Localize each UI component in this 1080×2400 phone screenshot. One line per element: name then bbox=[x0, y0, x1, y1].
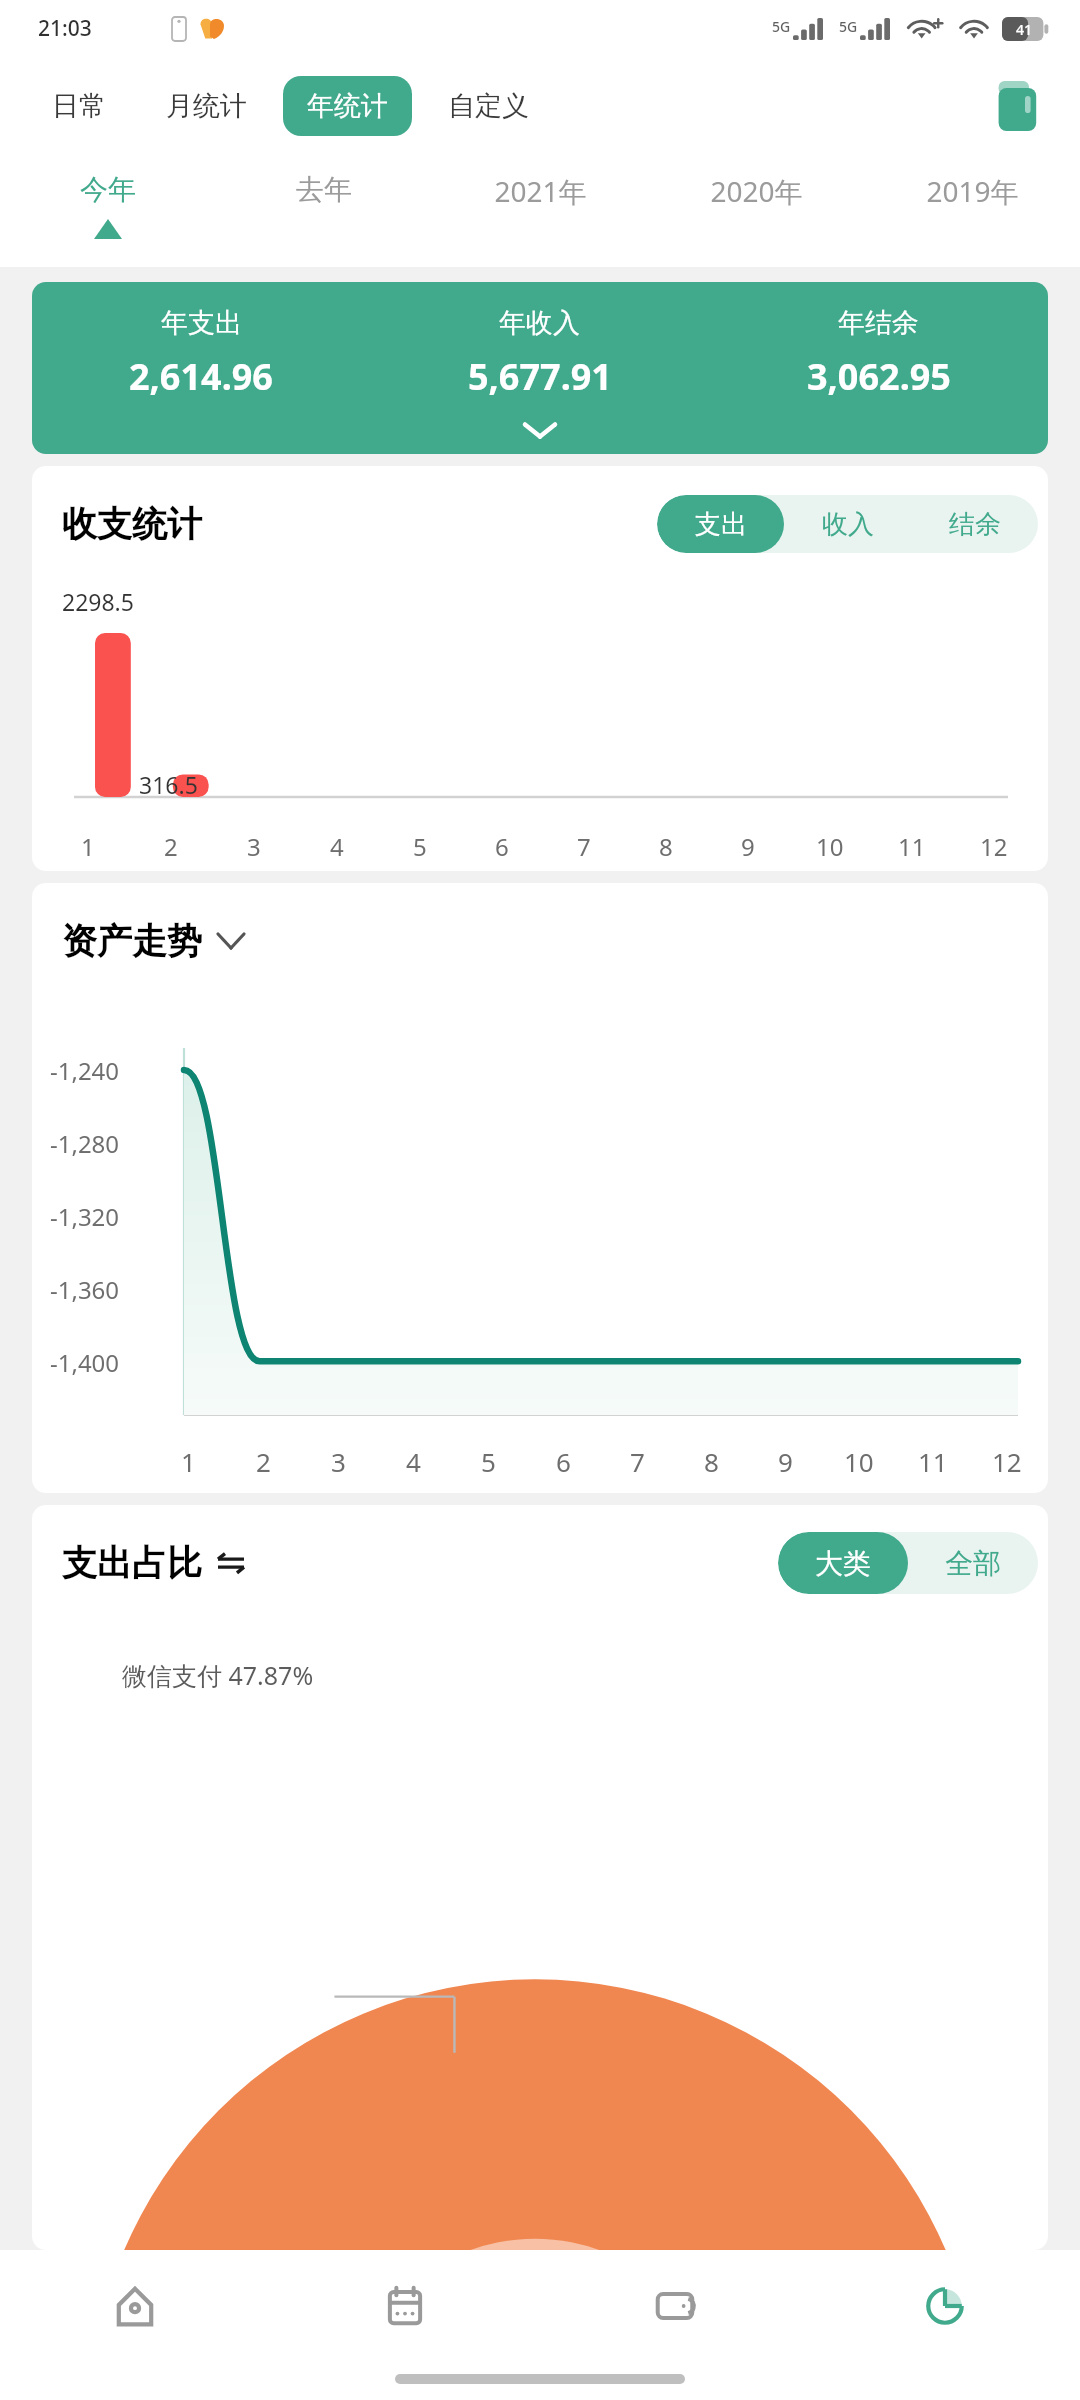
button[interactable]: 年支出 bbox=[32, 282, 1048, 454]
staticText: 6 bbox=[556, 1444, 571, 1479]
button[interactable]: 日常 bbox=[28, 76, 130, 136]
staticText: -1,400 bbox=[50, 1346, 120, 1379]
button[interactable]: 年统计 bbox=[283, 76, 412, 136]
staticText: 收入 bbox=[822, 508, 874, 541]
staticText: 5 bbox=[413, 830, 427, 863]
staticText: 今年 bbox=[80, 172, 136, 207]
button[interactable]: 自定义 bbox=[424, 76, 553, 136]
staticText: 4 bbox=[330, 830, 344, 863]
staticText: 日常 bbox=[52, 89, 106, 123]
staticText: 2020年 bbox=[710, 172, 803, 210]
staticText: 8 bbox=[704, 1444, 719, 1479]
staticText: 年支出 bbox=[161, 306, 242, 340]
staticText: 12 bbox=[980, 830, 1008, 863]
staticText: 9 bbox=[778, 1444, 793, 1479]
staticText: 结余 bbox=[949, 508, 1001, 541]
staticText: 月统计 bbox=[166, 89, 247, 123]
button[interactable]: 大类 bbox=[778, 1532, 908, 1594]
staticText: 4 bbox=[406, 1444, 421, 1479]
button[interactable]: 支出占比 bbox=[62, 1541, 246, 1585]
button[interactable]: 资产走势 bbox=[62, 919, 244, 963]
staticText: 3 bbox=[247, 830, 261, 863]
staticText: 21:03 bbox=[38, 14, 92, 43]
button[interactable]: 去年 bbox=[216, 155, 432, 253]
staticText: 316.5 bbox=[139, 769, 198, 800]
button[interactable]: 2020年 bbox=[648, 155, 864, 253]
staticText: 自定义 bbox=[448, 89, 529, 123]
staticText: 年统计 bbox=[307, 89, 388, 123]
staticText: 资产走势 bbox=[62, 919, 202, 963]
button[interactable]: 2021年 bbox=[432, 155, 648, 253]
button[interactable]: 明细 bbox=[270, 2250, 540, 2362]
staticText: 5,677.91 bbox=[468, 352, 612, 401]
button[interactable]: 钱包 bbox=[540, 2250, 810, 2362]
staticText: 3 bbox=[331, 1444, 346, 1479]
staticText: 9 bbox=[741, 830, 755, 863]
button[interactable]: 支出 bbox=[657, 495, 784, 553]
button[interactable]: 首页 bbox=[0, 2250, 270, 2362]
staticText: 2 bbox=[256, 1444, 271, 1479]
staticText: -1,360 bbox=[50, 1273, 120, 1306]
button[interactable]: 账本 bbox=[984, 73, 1050, 139]
button[interactable]: 图表 bbox=[810, 2250, 1080, 2362]
staticText: 2019年 bbox=[926, 172, 1019, 210]
staticText: 12 bbox=[992, 1444, 1022, 1479]
staticText: 5G bbox=[839, 17, 858, 36]
staticText: 5 bbox=[481, 1444, 496, 1479]
button[interactable]: 月统计 bbox=[142, 76, 271, 136]
staticText: 2,614.96 bbox=[129, 352, 273, 401]
staticText: 1 bbox=[81, 830, 95, 863]
button[interactable]: 全部 bbox=[908, 1532, 1038, 1594]
staticText: 微信支付 47.87% bbox=[122, 1658, 314, 1692]
staticText: 支出 bbox=[695, 508, 747, 541]
button[interactable]: 收入 bbox=[784, 495, 911, 553]
staticText: 年收入 bbox=[499, 306, 580, 340]
staticText: 10 bbox=[844, 1444, 874, 1479]
staticText: 8 bbox=[659, 830, 673, 863]
staticText: 大类 bbox=[815, 1546, 871, 1581]
staticText: 年结余 bbox=[838, 306, 919, 340]
staticText: 7 bbox=[630, 1444, 645, 1479]
button[interactable]: 结余 bbox=[911, 495, 1038, 553]
staticText: 全部 bbox=[945, 1546, 1001, 1581]
staticText: 支出占比 bbox=[62, 1541, 202, 1585]
staticText: 41 bbox=[1016, 20, 1033, 39]
staticText: 6 bbox=[495, 830, 509, 863]
staticText: 7 bbox=[577, 830, 591, 863]
staticText: 去年 bbox=[296, 172, 352, 207]
staticText: 10 bbox=[816, 830, 844, 863]
staticText: -1,280 bbox=[50, 1127, 120, 1160]
staticText: 2021年 bbox=[494, 172, 587, 210]
staticText: 5G bbox=[772, 17, 791, 36]
staticText: -1,320 bbox=[50, 1200, 120, 1233]
staticText: -1,240 bbox=[50, 1054, 120, 1087]
staticText: 收支统计 bbox=[62, 502, 202, 546]
staticText: 1 bbox=[181, 1444, 196, 1479]
staticText: 2298.5 bbox=[62, 586, 134, 617]
button[interactable]: 2019年 bbox=[864, 155, 1080, 253]
button[interactable]: 今年 bbox=[0, 155, 216, 253]
staticText: 11 bbox=[918, 1444, 948, 1479]
staticText: 3,062.95 bbox=[807, 352, 951, 401]
staticText: 2 bbox=[164, 830, 178, 863]
staticText: 11 bbox=[898, 830, 926, 863]
